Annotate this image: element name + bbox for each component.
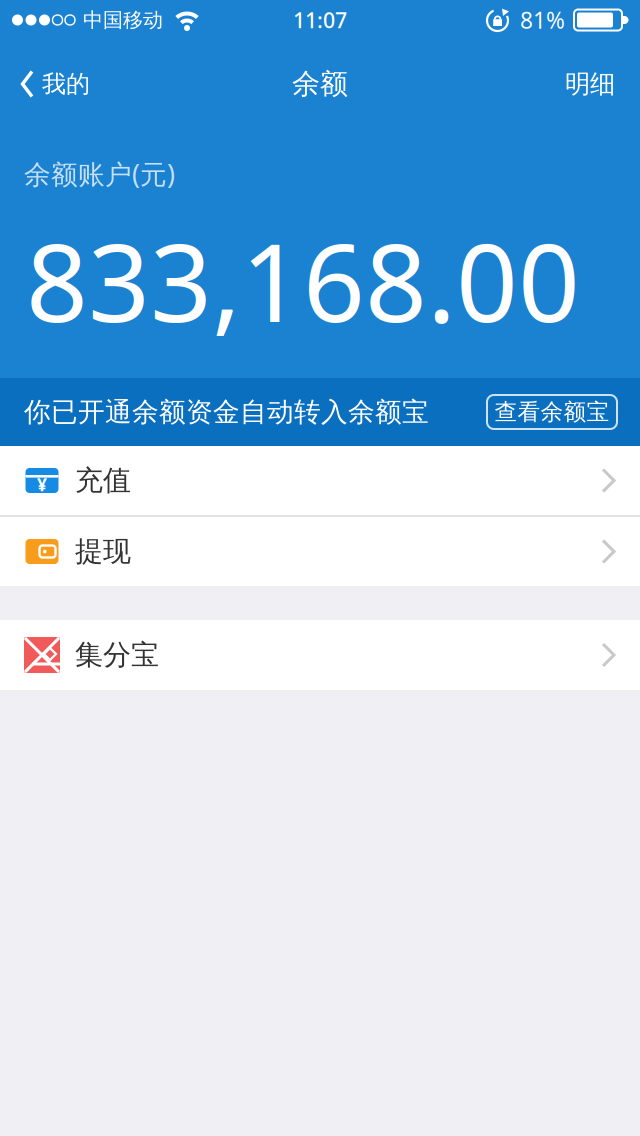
staticText: 你已开通余额资金自动转入余额宝 xyxy=(24,396,429,428)
staticText: 充值 xyxy=(75,463,131,498)
staticText: 余额 xyxy=(292,67,348,101)
staticText: 中国移动 xyxy=(83,8,163,32)
staticText: 81% xyxy=(520,5,565,35)
staticText: 余额账户(元) xyxy=(24,156,175,191)
button[interactable]: 集分宝 xyxy=(0,620,640,690)
button[interactable]: 提现 xyxy=(0,517,640,586)
staticText: 查看余额宝 xyxy=(494,398,609,426)
staticText: 833,168.00 xyxy=(26,208,580,352)
staticText: 提现 xyxy=(75,534,131,569)
button[interactable]: 我的 xyxy=(0,69,90,99)
button[interactable]: ¥ xyxy=(0,446,640,515)
button[interactable]: 明细 xyxy=(565,68,640,99)
button[interactable]: 查看余额宝 xyxy=(487,395,640,429)
staticText: ¥ xyxy=(37,473,47,496)
staticText: 明细 xyxy=(565,68,615,99)
staticText: 我的 xyxy=(42,69,90,99)
staticText: 11:07 xyxy=(293,6,347,34)
staticText: 集分宝 xyxy=(75,638,159,672)
